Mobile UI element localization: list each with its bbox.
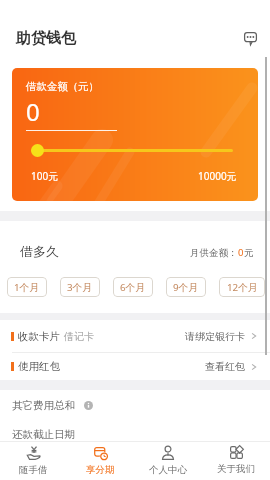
button[interactable]: 个人中心 [134, 442, 202, 480]
staticText: 0 [26, 95, 40, 128]
staticText: 借多久 [20, 243, 59, 259]
staticText: 月供金额： [190, 247, 238, 259]
staticText: 关于我们 [217, 463, 255, 475]
button[interactable]: 享分期 [67, 442, 134, 480]
button[interactable]: 使用红包 [0, 353, 270, 380]
button[interactable]: 3个月 [60, 277, 100, 297]
button[interactable]: 收款卡片 [0, 320, 270, 352]
button[interactable]: 关于我们 [202, 442, 270, 480]
staticText: 0 [238, 246, 244, 259]
staticText: 6个月 [120, 281, 146, 294]
staticText: 随手借 [19, 464, 48, 476]
staticText: 1个月 [14, 281, 40, 294]
button[interactable]: 还款截止日期 [0, 428, 270, 440]
button[interactable]: 9个月 [166, 277, 206, 297]
staticText: 3个月 [67, 281, 93, 294]
staticText: 10000元 [198, 169, 237, 183]
staticText: 12个月 [227, 281, 258, 294]
staticText: 查看红包 [205, 360, 245, 373]
button[interactable]: 1个月 [7, 277, 47, 297]
staticText: 个人中心 [149, 464, 187, 476]
staticText: 9个月 [173, 281, 199, 294]
staticText: 100元 [31, 169, 59, 183]
other: Fee info [82, 399, 94, 411]
button[interactable]: 12个月 [219, 277, 265, 297]
button[interactable]: Amount slider [31, 144, 44, 157]
staticText: 助贷钱包 [16, 29, 76, 48]
staticText: 收款卡片 [18, 330, 60, 343]
staticText: 其它费用总和 [12, 399, 75, 411]
staticText: 使用红包 [18, 360, 60, 373]
button[interactable]: 随手借 [0, 442, 67, 480]
staticText: 借款金额（元） [26, 80, 99, 93]
button[interactable]: 其它费用总和 [0, 399, 270, 411]
staticText: 享分期 [86, 464, 115, 476]
staticText: 借记卡 [64, 330, 94, 343]
staticText: 元 [244, 247, 254, 259]
button[interactable]: Messages [238, 26, 262, 50]
staticText: 还款截止日期 [12, 428, 75, 440]
button[interactable]: 6个月 [113, 277, 153, 297]
staticText: 请绑定银行卡 [185, 330, 245, 343]
